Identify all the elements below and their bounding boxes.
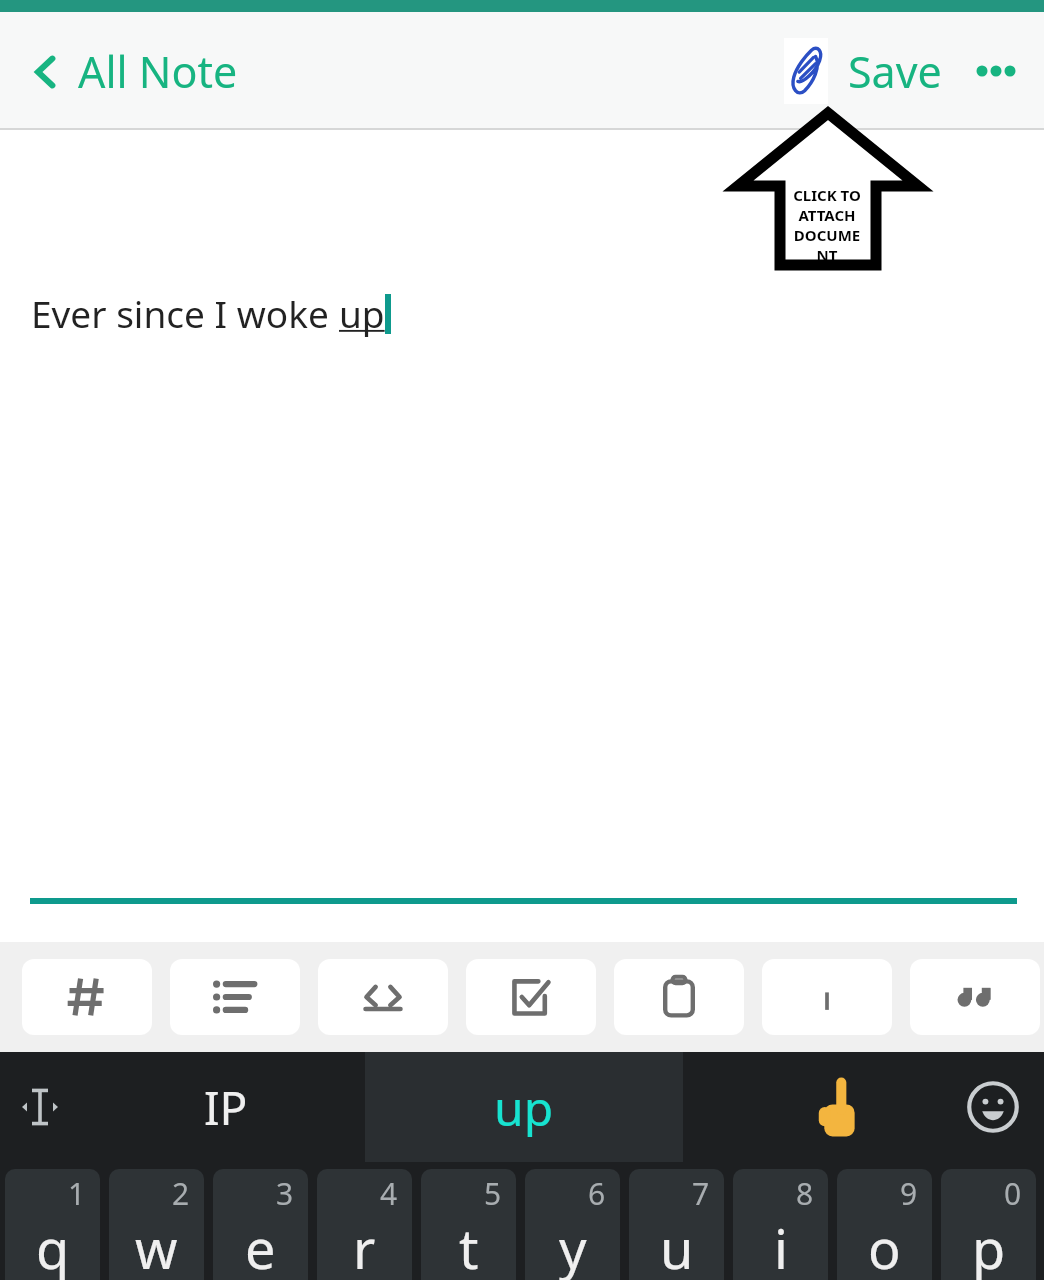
button[interactable]: Clipboard	[614, 959, 744, 1035]
button[interactable]: up	[365, 1052, 683, 1162]
button[interactable]: 9	[837, 1169, 932, 1280]
staticText: t	[459, 1211, 479, 1280]
staticText: ATTACH	[798, 205, 856, 225]
staticText: o	[868, 1211, 901, 1280]
button[interactable]: 2	[109, 1169, 204, 1280]
staticText: Save	[848, 42, 942, 101]
button[interactable]: Heading	[22, 959, 152, 1035]
staticText: q	[36, 1211, 70, 1280]
staticText: up	[339, 288, 385, 338]
staticText: 0	[1004, 1173, 1022, 1214]
staticText: u	[660, 1211, 694, 1280]
staticText: up	[494, 1075, 554, 1140]
staticText: 6	[588, 1173, 606, 1214]
staticText: r	[353, 1211, 376, 1280]
button[interactable]: Move cursor	[12, 1079, 68, 1135]
staticText: 1	[68, 1173, 86, 1214]
staticText: 8	[796, 1173, 814, 1214]
button[interactable]: All Note	[26, 42, 238, 101]
button[interactable]: Gesture typing	[804, 1072, 874, 1142]
staticText: DOCUMENT	[790, 225, 864, 265]
button[interactable]: 4	[317, 1169, 412, 1280]
button[interactable]: 6	[525, 1169, 620, 1280]
button[interactable]: More options	[968, 43, 1024, 99]
button[interactable]: 0	[941, 1169, 1036, 1280]
staticText: 9	[900, 1173, 918, 1214]
button[interactable]: Attach document	[784, 38, 828, 104]
button[interactable]: 1	[5, 1169, 100, 1280]
button[interactable]: Bullet list	[170, 959, 300, 1035]
staticText: y	[559, 1211, 587, 1280]
button[interactable]: IP	[204, 1076, 248, 1139]
staticText: CLICK TO	[793, 185, 861, 205]
staticText: Ever since I woke	[31, 288, 339, 338]
button[interactable]: 5	[421, 1169, 516, 1280]
button[interactable]: Emoji	[960, 1074, 1026, 1140]
button[interactable]: Quote	[910, 959, 1040, 1035]
button[interactable]: 7	[629, 1169, 724, 1280]
staticText: 7	[692, 1173, 710, 1214]
staticText: 5	[484, 1173, 502, 1214]
staticText: e	[245, 1211, 276, 1280]
button[interactable]: Divider	[762, 959, 892, 1035]
button[interactable]: Checklist	[466, 959, 596, 1035]
button[interactable]: 3	[213, 1169, 308, 1280]
staticText: 2	[172, 1173, 190, 1214]
button[interactable]: Save	[848, 42, 942, 101]
button[interactable]: Code	[318, 959, 448, 1035]
staticText: IP	[204, 1076, 248, 1139]
staticText: 3	[276, 1173, 294, 1214]
staticText: i	[774, 1211, 788, 1280]
staticText: All Note	[78, 42, 238, 101]
staticText: w	[135, 1211, 178, 1280]
button[interactable]: 8	[733, 1169, 828, 1280]
staticText: p	[972, 1211, 1006, 1280]
staticText: 4	[380, 1173, 398, 1214]
